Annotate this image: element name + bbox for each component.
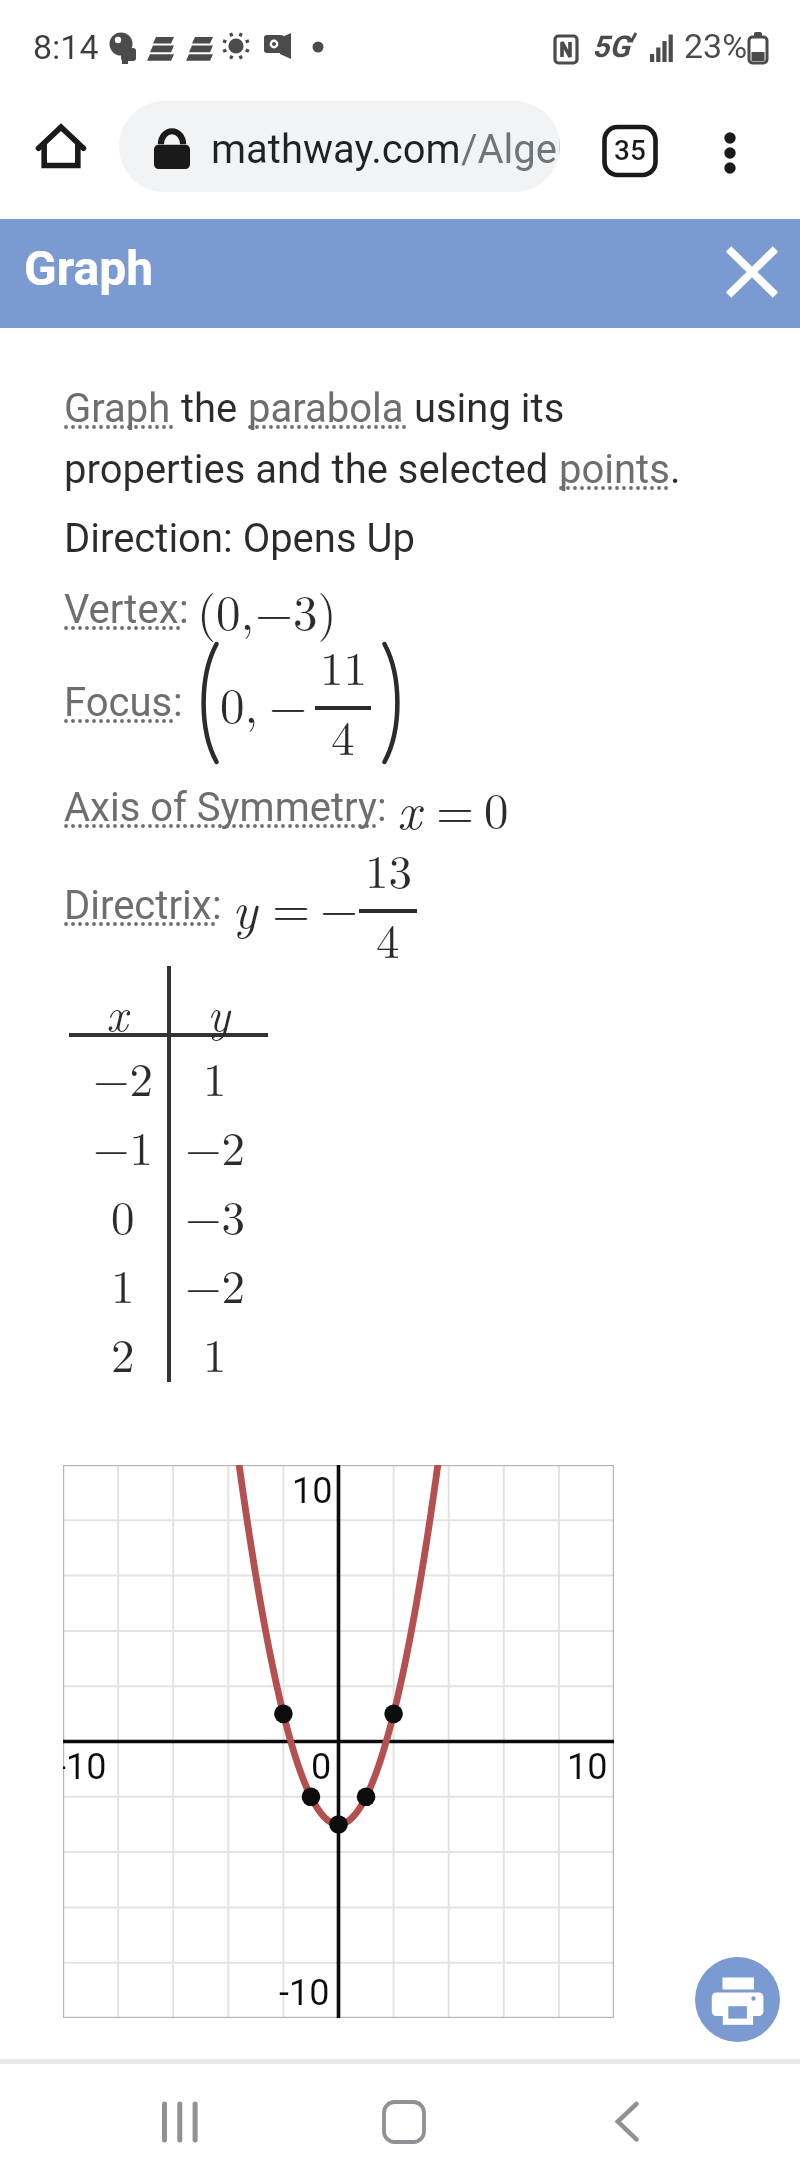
staticText: −2 (93, 1043, 154, 1110)
staticText: 0, (220, 668, 259, 737)
staticText: 35 (614, 134, 646, 167)
staticText: 10 (567, 1746, 608, 1788)
staticText: −2 (185, 1250, 246, 1317)
staticText: Graph (24, 240, 154, 296)
staticText: points (559, 446, 670, 493)
button[interactable]: Home (364, 2078, 444, 2158)
staticText: − (320, 871, 359, 940)
staticText: 1 (203, 1043, 227, 1110)
staticText: : (377, 784, 387, 831)
staticText: y (207, 978, 230, 1045)
staticText: mathway.com (211, 126, 461, 173)
staticText: 0 (311, 1746, 332, 1788)
staticText: 8:14 (33, 27, 99, 67)
staticText: −1 (93, 1112, 154, 1179)
staticText: : (173, 679, 183, 726)
staticText: 23% (684, 26, 748, 66)
staticText: . (670, 446, 681, 493)
staticText: Focus (64, 679, 173, 726)
staticText: = (436, 773, 475, 842)
staticText: 11 (320, 632, 367, 699)
button[interactable]: Tabs (595, 116, 665, 186)
staticText: 0 (111, 1181, 135, 1248)
button[interactable]: Print (695, 1957, 780, 2042)
button[interactable]: Back (586, 2080, 666, 2160)
staticText: 13 (365, 835, 412, 902)
staticText: (0, (197, 575, 255, 644)
staticText: 0 (484, 773, 509, 842)
staticText: 1 (203, 1319, 227, 1386)
button[interactable]: Recent apps (140, 2080, 220, 2160)
staticText: the (171, 385, 248, 432)
staticText: /Algeb (461, 126, 560, 173)
staticText: -10 (63, 1746, 107, 1788)
staticText: -10 (279, 1972, 330, 2014)
staticText: −3 (185, 1181, 246, 1248)
button[interactable]: More options (695, 118, 765, 188)
staticText: parabola (248, 385, 404, 432)
staticText: Graph (64, 385, 171, 432)
staticText: Directrix (64, 882, 212, 929)
staticText: x (397, 770, 422, 844)
staticText: 5G (592, 29, 630, 64)
staticText: 10 (292, 1470, 333, 1512)
staticText: 4 (376, 905, 400, 972)
staticText: 1 (111, 1250, 135, 1317)
staticText: − (269, 668, 308, 737)
staticText: properties and the selected (64, 446, 559, 493)
staticText: Axis of Symmetry (64, 784, 377, 831)
button[interactable]: mathway.com (119, 101, 560, 192)
staticText: 4 (331, 702, 355, 769)
staticText: : (212, 882, 222, 929)
staticText: Vertex (64, 586, 179, 633)
staticText: = (272, 871, 311, 940)
staticText: : (179, 586, 189, 633)
button[interactable]: Close (708, 227, 795, 314)
staticText: −3) (255, 575, 337, 644)
button[interactable]: Home (28, 114, 94, 180)
staticText: y (232, 869, 258, 943)
staticText: Direction: Opens Up (64, 515, 415, 562)
staticText: x (106, 978, 128, 1045)
staticText: using its (404, 385, 565, 432)
staticText: −2 (185, 1112, 246, 1179)
staticText: 2 (111, 1319, 135, 1386)
